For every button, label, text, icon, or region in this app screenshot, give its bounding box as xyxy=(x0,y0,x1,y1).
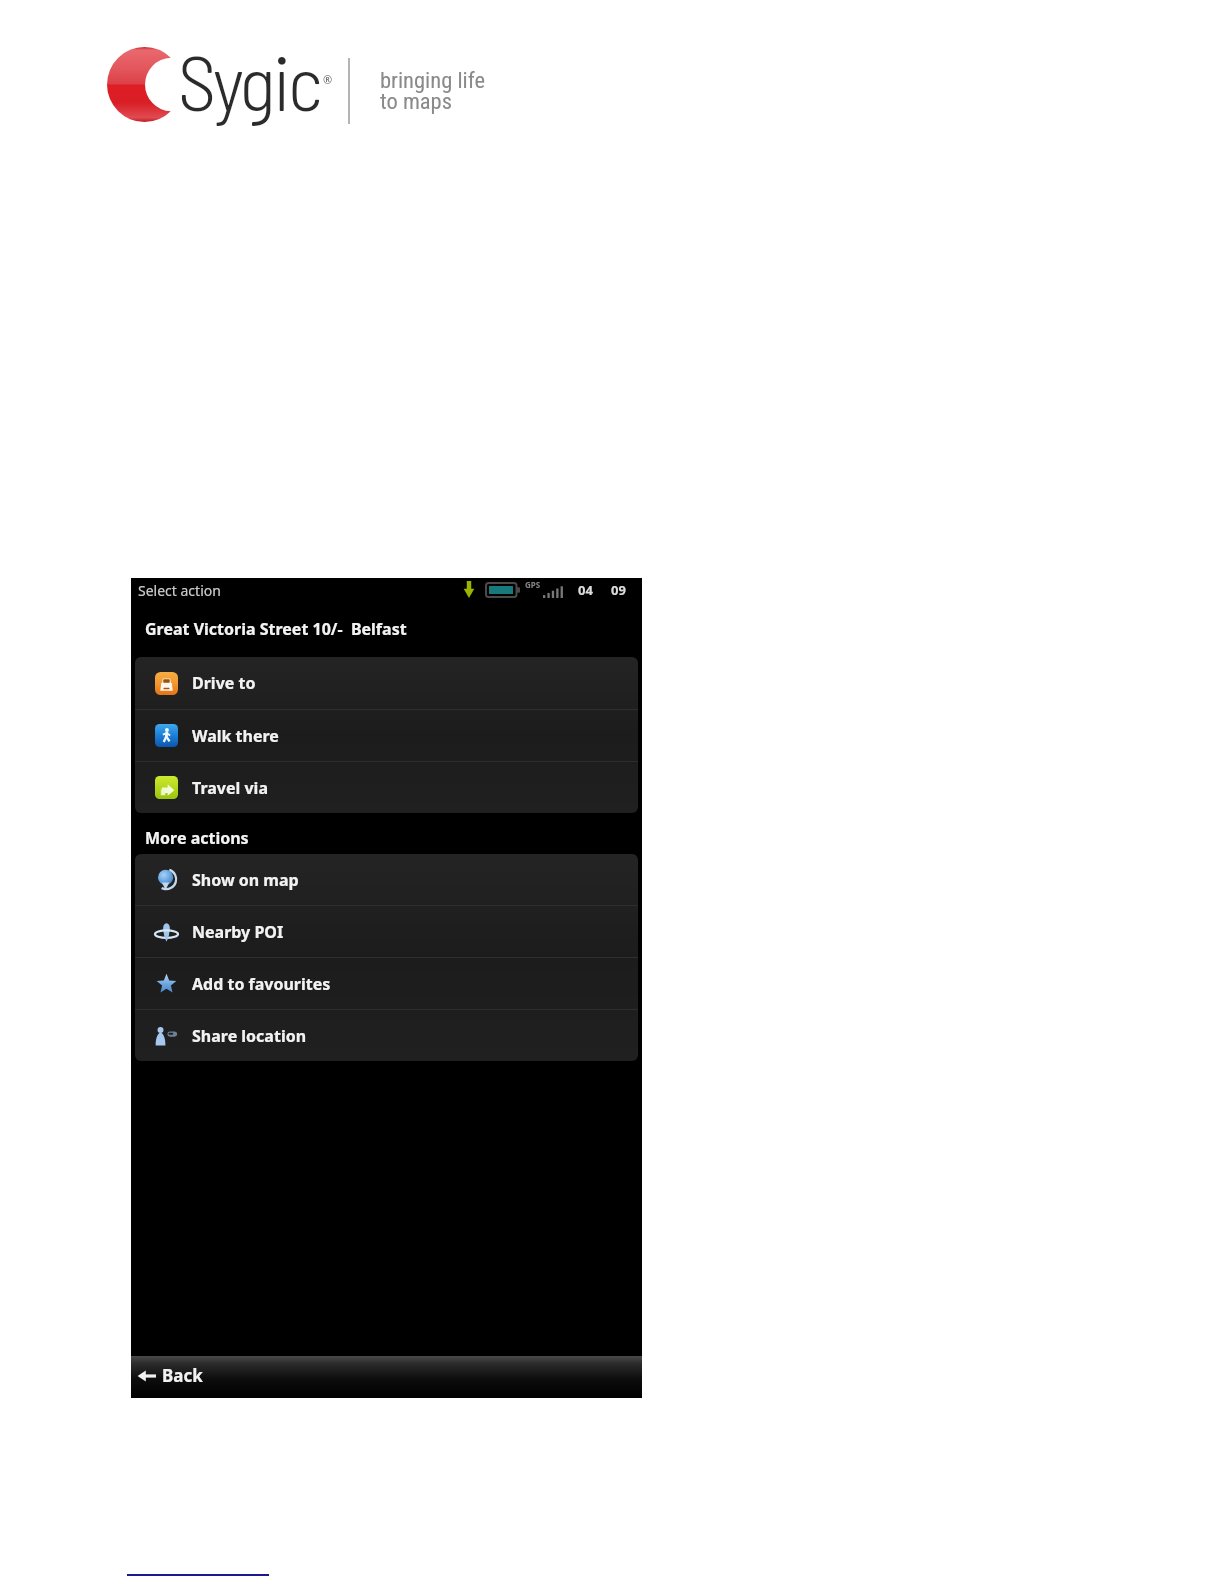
button[interactable]: Add to favourites xyxy=(135,958,638,1009)
button[interactable]: Drive to xyxy=(135,657,638,709)
staticText: Share location xyxy=(192,1025,307,1047)
button[interactable]: Show on map xyxy=(135,854,638,905)
button[interactable]: Travel via xyxy=(135,762,638,813)
staticText: Drive to xyxy=(192,672,256,694)
staticText: ® xyxy=(323,72,333,87)
staticText: Walk there xyxy=(192,725,279,747)
staticText: Great Victoria Street 10/- Belfast xyxy=(145,618,407,640)
staticText: Add to favourites xyxy=(192,973,331,995)
staticText: GPS xyxy=(525,579,541,590)
staticText: Show on map xyxy=(192,869,299,891)
button[interactable]: Walk there xyxy=(135,710,638,761)
staticText: More actions xyxy=(145,827,249,849)
button[interactable]: Share location xyxy=(135,1010,638,1061)
staticText: Nearby POI xyxy=(192,921,284,943)
staticText: Select action xyxy=(138,581,221,600)
button[interactable]: Nearby POI xyxy=(135,906,638,957)
staticText: 09 xyxy=(611,581,626,599)
staticText: Back xyxy=(162,1364,203,1387)
staticText: 04 xyxy=(578,581,593,599)
button[interactable]: Back xyxy=(131,1356,642,1398)
staticText: Sygic xyxy=(178,34,320,126)
staticText: Travel via xyxy=(192,777,268,799)
staticText: bringing life to maps xyxy=(380,67,486,114)
